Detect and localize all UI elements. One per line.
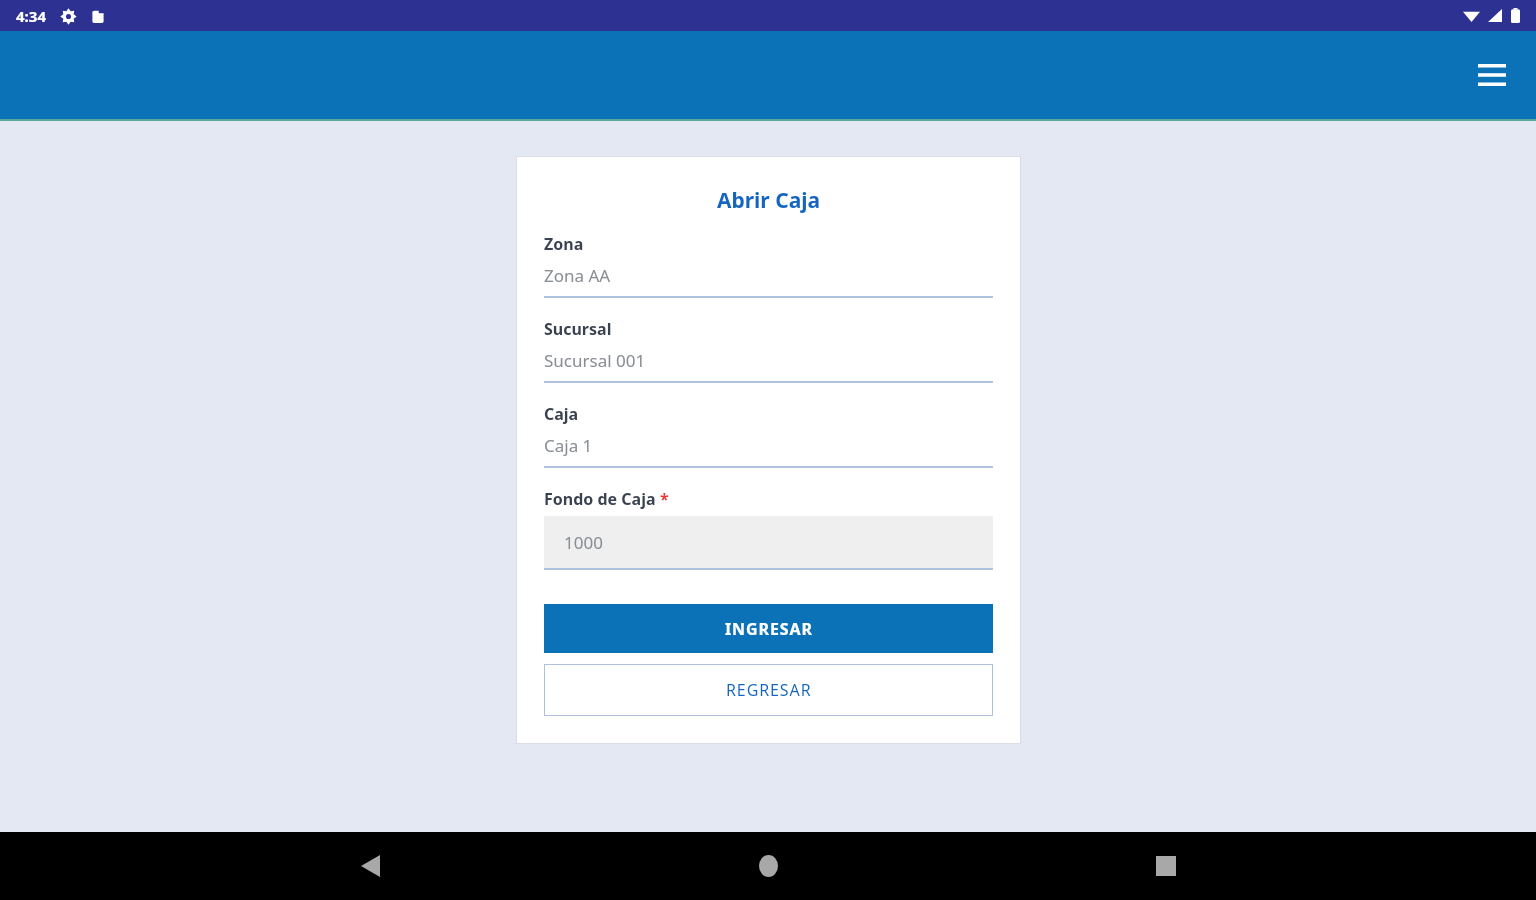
- staticText: Caja 1: [544, 434, 593, 457]
- staticText: INGRESAR: [725, 618, 813, 640]
- staticText: Caja: [544, 403, 579, 425]
- button[interactable]: Home: [740, 838, 796, 894]
- button[interactable]: INGRESAR: [544, 604, 993, 653]
- staticText: Sucursal 001: [544, 349, 646, 372]
- button[interactable]: Sucursal: [544, 318, 993, 383]
- staticText: *: [660, 488, 669, 510]
- staticText: REGRESAR: [726, 679, 812, 701]
- staticText: Zona: [544, 233, 584, 255]
- staticText: Zona AA: [544, 264, 611, 287]
- button[interactable]: Recents: [1138, 838, 1194, 894]
- button[interactable]: Zona: [544, 233, 993, 298]
- button[interactable]: Menu: [1470, 53, 1514, 97]
- staticText: 4:34: [16, 6, 46, 26]
- staticText: Sucursal: [544, 318, 612, 340]
- staticText: Fondo de Caja: [544, 488, 660, 510]
- staticText: Abrir Caja: [544, 186, 993, 215]
- button[interactable]: 1000: [544, 516, 993, 570]
- staticText: 1000: [564, 531, 603, 554]
- button[interactable]: Back: [342, 838, 398, 894]
- button[interactable]: Caja: [544, 403, 993, 468]
- button[interactable]: REGRESAR: [544, 664, 993, 716]
